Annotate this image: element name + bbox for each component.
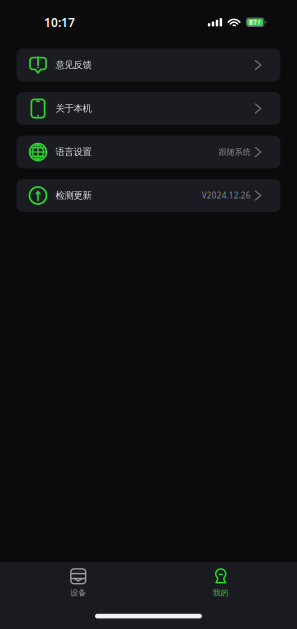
staticText: 10:17	[44, 14, 75, 30]
button[interactable]: 我的	[149, 563, 292, 603]
button[interactable]: 意见反馈	[16, 48, 280, 81]
button[interactable]: 设备	[7, 563, 149, 603]
staticText: 关于本机	[55, 103, 91, 114]
button[interactable]: 关于本机	[16, 92, 280, 125]
staticText: 跟随系统	[219, 147, 251, 157]
staticText: 意见反馈	[55, 59, 91, 71]
staticText: V2024.12.26	[202, 190, 251, 201]
button[interactable]: 语言设置	[16, 135, 280, 168]
staticText: 设备	[70, 588, 86, 598]
staticText: 检测更新	[55, 190, 91, 201]
staticText: 我的	[213, 588, 229, 598]
staticText: 87	[249, 18, 257, 27]
staticText: 语言设置	[55, 146, 91, 158]
button[interactable]: 检测更新	[16, 179, 280, 212]
